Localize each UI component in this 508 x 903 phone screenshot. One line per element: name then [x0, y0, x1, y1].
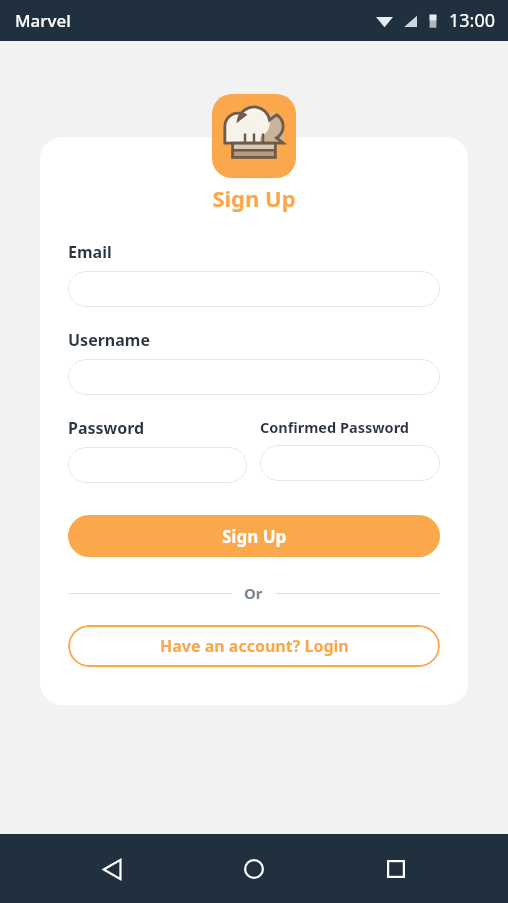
button[interactable]: Recent apps [366, 839, 426, 899]
button[interactable]: Home [224, 839, 284, 899]
staticText: Username [68, 329, 150, 351]
button[interactable]: Back [82, 839, 142, 899]
button[interactable]: Sign Up [68, 515, 440, 557]
staticText: Sign Up [222, 525, 287, 548]
button[interactable] [68, 271, 440, 307]
staticText: Or [244, 583, 263, 603]
button[interactable] [260, 445, 440, 481]
button[interactable] [68, 359, 440, 395]
staticText: Password [68, 417, 145, 439]
other: App logo [212, 94, 296, 178]
staticText: Marvel [15, 9, 71, 32]
button[interactable] [68, 447, 247, 483]
staticText: Email [68, 241, 112, 263]
staticText: Sign Up [68, 183, 440, 213]
staticText: Have an account? Login [160, 635, 349, 657]
staticText: 13:00 [449, 8, 496, 33]
staticText: Confirmed Password [260, 417, 410, 437]
button[interactable]: Have an account? Login [68, 625, 440, 667]
